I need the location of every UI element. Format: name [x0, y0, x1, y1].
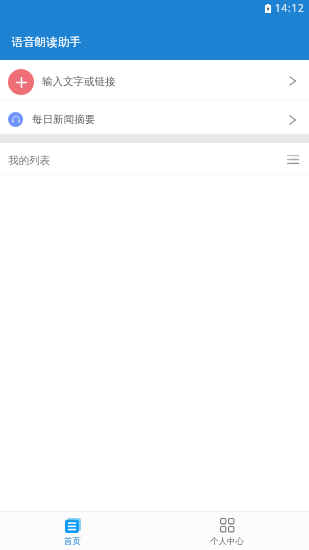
button[interactable]: Sort list: [285, 151, 301, 167]
staticText: 个人中心: [210, 536, 244, 547]
staticText: 我的列表: [8, 154, 50, 167]
other: Open: [286, 75, 298, 87]
button[interactable]: 每日新闻摘要: [0, 101, 309, 134]
staticText: 每日新闻摘要: [32, 113, 95, 126]
button[interactable]: 首页: [0, 511, 154, 550]
button[interactable]: 输入文字或链接: [0, 60, 309, 101]
other: Open: [286, 114, 298, 126]
staticText: 14:12: [275, 1, 305, 15]
button[interactable]: 我的列表: [0, 143, 309, 175]
staticText: 首页: [64, 536, 81, 547]
button[interactable]: 个人中心: [154, 511, 309, 550]
staticText: 语音朗读助手: [12, 35, 81, 49]
staticText: 输入文字或链接: [42, 75, 116, 88]
